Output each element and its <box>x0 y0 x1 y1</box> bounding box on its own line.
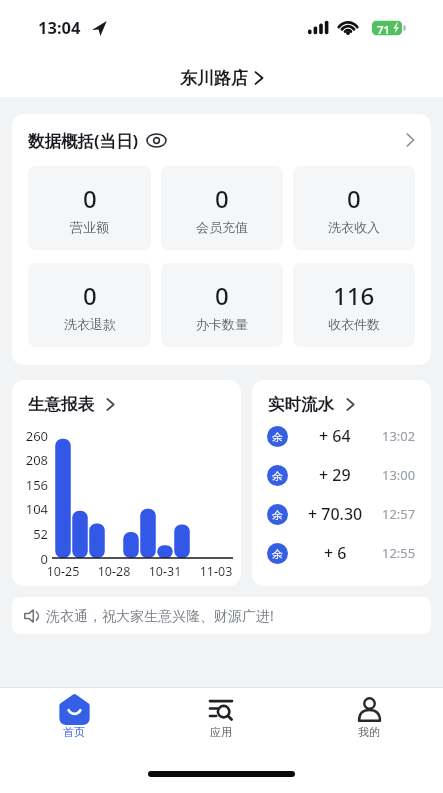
staticText: 洗衣收入 <box>328 219 380 235</box>
button[interactable]: 实时流水 <box>268 392 355 416</box>
staticText: 0 <box>83 279 97 312</box>
staticText: 洗衣通，祝大家生意兴隆、财源广进! <box>46 606 274 625</box>
button[interactable]: 应用 <box>147 695 295 751</box>
staticText: 104 <box>18 500 48 518</box>
staticText: + 70.30 <box>308 503 363 525</box>
staticText: 71 <box>377 22 391 38</box>
staticText: 余 <box>272 430 283 444</box>
staticText: 营业额 <box>70 219 109 235</box>
staticText: 208 <box>18 451 48 469</box>
button[interactable]: 0 <box>161 166 283 250</box>
staticText: 11-03 <box>194 563 238 580</box>
button[interactable]: 首页 <box>0 695 147 751</box>
staticText: 余 <box>272 469 283 483</box>
staticText: 0 <box>347 182 361 215</box>
button[interactable]: 余 <box>267 419 416 453</box>
staticText: 10-28 <box>92 563 136 580</box>
staticText: 会员充值 <box>196 219 248 235</box>
button[interactable]: 我的 <box>295 695 443 751</box>
staticText: 52 <box>18 525 48 543</box>
staticText: 数据概括(当日) <box>28 129 139 152</box>
button[interactable]: 生意报表 <box>28 392 115 416</box>
staticText: 0 <box>18 550 48 568</box>
staticText: 首页 <box>63 725 85 739</box>
staticText: 156 <box>18 476 48 494</box>
staticText: 收衣件数 <box>328 316 380 332</box>
staticText: 生意报表 <box>28 394 94 415</box>
button[interactable]: 0 <box>28 166 151 250</box>
staticText: 东川路店 <box>180 68 248 89</box>
staticText: 0 <box>83 182 97 215</box>
staticText: + 29 <box>319 464 351 486</box>
button[interactable]: 0 <box>161 263 283 347</box>
staticText: 13:02 <box>382 427 416 445</box>
staticText: 12:55 <box>382 544 416 562</box>
staticText: 办卡数量 <box>196 316 248 332</box>
staticText: 0 <box>215 279 229 312</box>
staticText: 12:57 <box>382 505 416 523</box>
staticText: 我的 <box>358 725 380 739</box>
staticText: 余 <box>272 547 283 561</box>
button[interactable]: 116 <box>293 263 415 347</box>
button[interactable]: 洗衣通，祝大家生意兴隆、财源广进! <box>24 597 419 634</box>
button[interactable]: 余 <box>267 536 416 570</box>
button[interactable]: 数据概括(当日) <box>28 128 415 152</box>
staticText: 洗衣退款 <box>64 316 116 332</box>
staticText: 10-31 <box>143 563 187 580</box>
button[interactable]: 东川路店 <box>0 64 443 92</box>
staticText: 13:00 <box>382 466 416 484</box>
staticText: + 64 <box>319 425 351 447</box>
staticText: 实时流水 <box>268 394 334 415</box>
button[interactable]: 余 <box>267 458 416 492</box>
button[interactable]: 0 <box>28 263 151 347</box>
staticText: 116 <box>333 279 375 312</box>
staticText: 260 <box>18 427 48 445</box>
staticText: 10-25 <box>41 563 85 580</box>
staticText: 0 <box>215 182 229 215</box>
staticText: 余 <box>272 508 283 522</box>
staticText: 13:04 <box>38 16 81 38</box>
staticText: + 6 <box>324 542 347 564</box>
staticText: 应用 <box>210 725 232 739</box>
button[interactable]: 余 <box>267 497 416 531</box>
button[interactable]: 0 <box>293 166 415 250</box>
